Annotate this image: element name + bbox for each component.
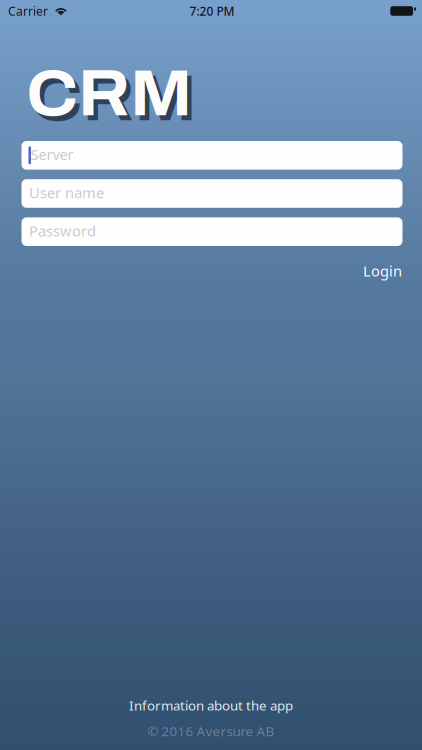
staticText: Login	[363, 261, 402, 280]
button[interactable]: User name	[21, 179, 402, 208]
staticText: Server	[31, 145, 74, 164]
button[interactable]: Password	[21, 217, 402, 246]
button[interactable]: Server	[21, 141, 402, 170]
staticText: CRM	[30, 64, 196, 134]
staticText: Carrier	[8, 3, 48, 19]
button[interactable]: Information about the app	[117, 693, 305, 718]
staticText: User name	[29, 183, 104, 202]
staticText: CRM	[26, 59, 192, 129]
staticText: © 2016 Aversure AB	[147, 722, 274, 740]
button[interactable]: Login	[353, 254, 412, 287]
staticText: 7:20 PM	[189, 3, 234, 19]
staticText: Information about the app	[129, 697, 293, 714]
staticText: Password	[29, 221, 96, 240]
